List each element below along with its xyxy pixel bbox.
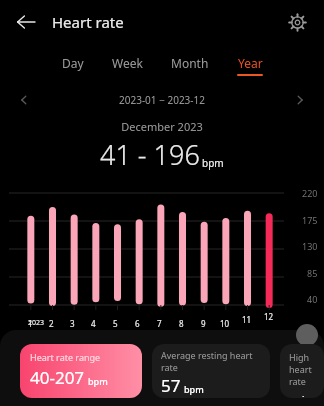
staticText: 2 xyxy=(49,318,54,329)
staticText: 7 xyxy=(157,318,162,329)
staticText: bpm xyxy=(88,375,108,387)
staticText: Heart rate range xyxy=(30,351,101,363)
button[interactable]: Back xyxy=(8,4,44,40)
staticText: 175 xyxy=(302,214,318,226)
button[interactable]: Average resting heart rate xyxy=(152,344,270,398)
staticText: 2023-01 − 2023-12 xyxy=(119,93,205,107)
staticText: 5 xyxy=(113,318,118,329)
staticText: 9 xyxy=(201,318,206,329)
staticText: 10 xyxy=(220,318,230,329)
button[interactable]: Settings xyxy=(280,5,314,39)
staticText: 8 xyxy=(179,318,184,329)
staticText: Heart rate xyxy=(52,12,124,32)
staticText: December 2023 xyxy=(0,119,324,134)
button[interactable]: Heart rate range xyxy=(20,344,142,398)
staticText: 57 xyxy=(161,374,181,397)
staticText: 11 xyxy=(242,314,252,325)
staticText: Week xyxy=(112,55,143,71)
staticText: 41 - 196 xyxy=(100,136,200,173)
staticText: Month xyxy=(171,55,209,71)
staticText: High heart rate xyxy=(289,351,324,387)
staticText: 12 xyxy=(264,311,274,322)
staticText: 4 xyxy=(91,318,96,329)
staticText: bpm xyxy=(184,383,204,395)
staticText: Average resting heart rate xyxy=(161,349,270,373)
staticText: 85 xyxy=(307,267,318,279)
staticText: bpm xyxy=(202,156,224,170)
staticText: 3 xyxy=(70,318,75,329)
button[interactable]: Scroll indicator xyxy=(296,324,318,346)
staticText: 40 xyxy=(307,293,318,305)
staticText: 130 xyxy=(302,240,318,252)
button[interactable]: High heart rate xyxy=(280,344,324,398)
staticText: Year xyxy=(238,55,263,71)
button[interactable]: Week xyxy=(108,52,147,79)
staticText: 2023 xyxy=(28,318,45,328)
button[interactable]: Year xyxy=(233,52,267,79)
staticText: Day xyxy=(62,55,84,71)
staticText: 6 xyxy=(135,318,140,329)
button[interactable]: Day xyxy=(58,52,88,79)
staticText: bpm xyxy=(302,393,322,397)
staticText: 40-207 xyxy=(30,366,85,389)
staticText: 1 xyxy=(28,318,33,329)
staticText: 220 xyxy=(302,187,318,199)
button[interactable]: Month xyxy=(167,52,213,79)
button[interactable]: Previous xyxy=(12,88,36,112)
button[interactable]: Next xyxy=(288,88,312,112)
